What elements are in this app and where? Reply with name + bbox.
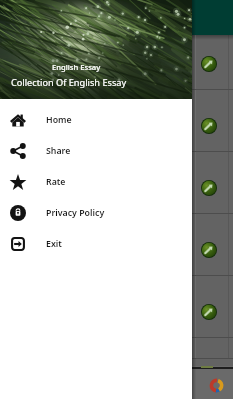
button[interactable]: Open essay 5 (0, 276, 233, 338)
button[interactable]: Open essay 3 (0, 152, 233, 214)
button[interactable]: Exit (0, 228, 192, 259)
button[interactable]: Share (0, 135, 192, 166)
button[interactable]: Home (0, 104, 192, 135)
button[interactable]: Privacy Policy (0, 197, 192, 228)
button[interactable]: Open essay 4 (0, 214, 233, 276)
staticText: English Essay (52, 62, 101, 72)
staticText: Collection Of English Essay (11, 76, 127, 89)
staticText: Share (46, 145, 71, 157)
button[interactable]: Open essay 6 (0, 338, 233, 359)
button[interactable]: Rate (0, 166, 192, 197)
staticText: Privacy Policy (46, 207, 105, 219)
staticText: Home (46, 114, 72, 126)
button[interactable]: Open essay 2 (0, 90, 233, 152)
button[interactable]: Open essay 1 (0, 35, 233, 90)
staticText: Rate (46, 176, 66, 188)
staticText: Exit (46, 238, 62, 250)
